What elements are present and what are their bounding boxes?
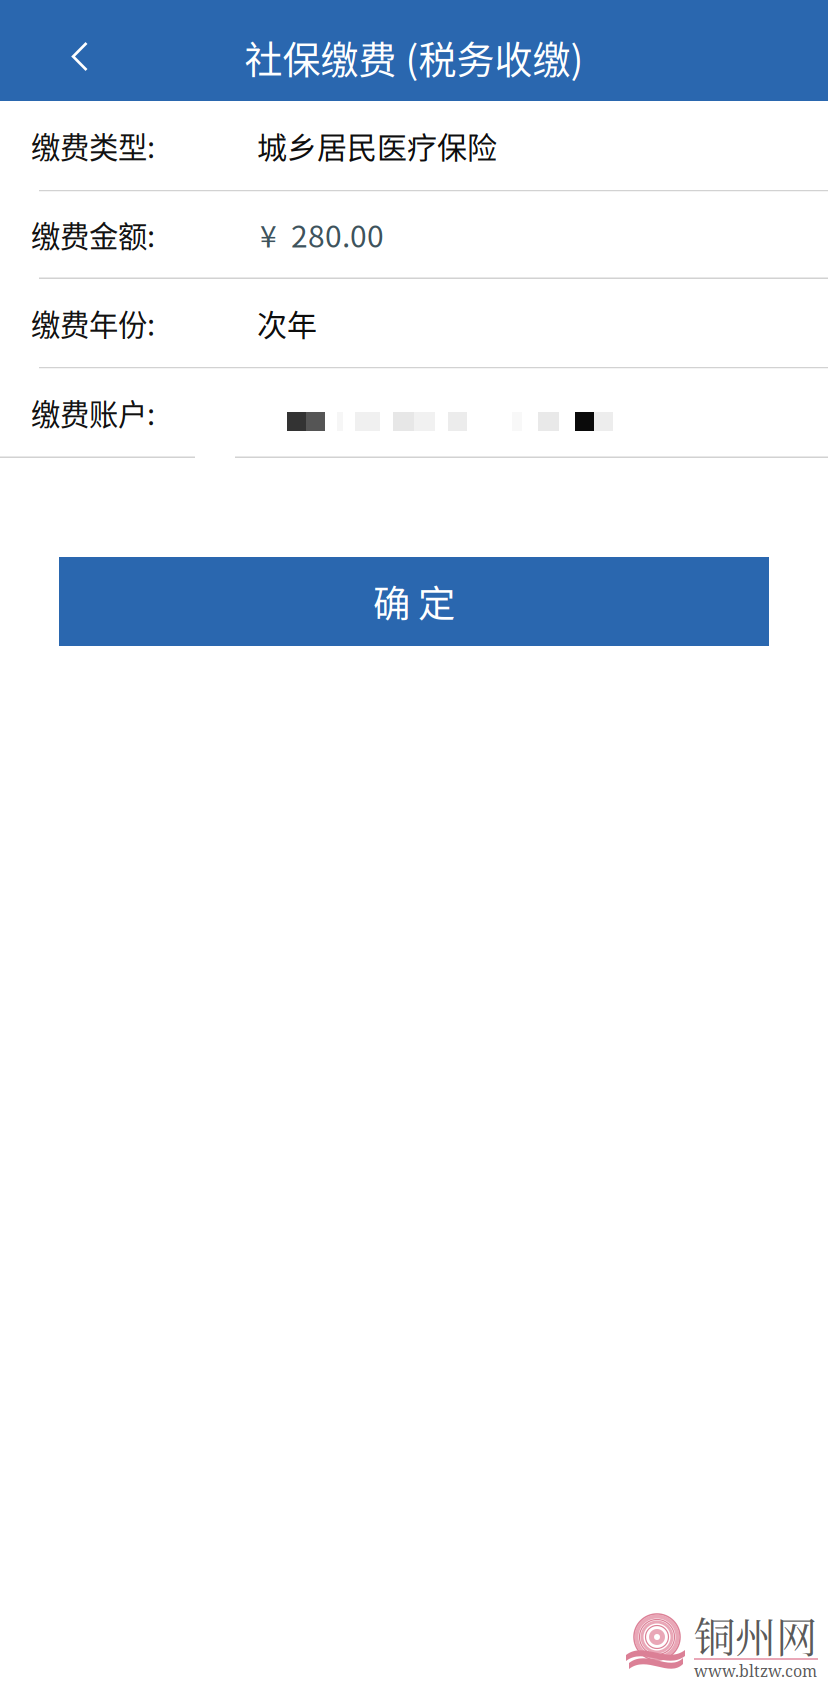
staticText: 城乡居民医疗保险 [257, 124, 497, 167]
button[interactable]: 缴费年份: [0, 279, 828, 367]
staticText: 确 定 [373, 574, 455, 629]
staticText: 次年 [257, 301, 317, 345]
staticText: 缴费年份: [31, 302, 155, 344]
staticText: 缴费类型: [31, 124, 155, 167]
button[interactable]: Back [26, 0, 134, 100]
button[interactable]: 缴费类型: [0, 101, 828, 190]
staticText: 社保缴费 (税务收缴) [244, 29, 583, 84]
button[interactable]: 缴费账户: [0, 368, 828, 456]
button[interactable]: 确 定 [59, 557, 769, 646]
button[interactable]: 缴费金额: [0, 191, 828, 277]
staticText: 铜州网 [694, 1605, 817, 1664]
staticText: www.bltzw.com [694, 1660, 817, 1682]
staticText: 缴费账户: [31, 391, 155, 434]
staticText: 缴费金额: [31, 213, 155, 256]
staticText: ¥ 280.00 [260, 213, 384, 256]
